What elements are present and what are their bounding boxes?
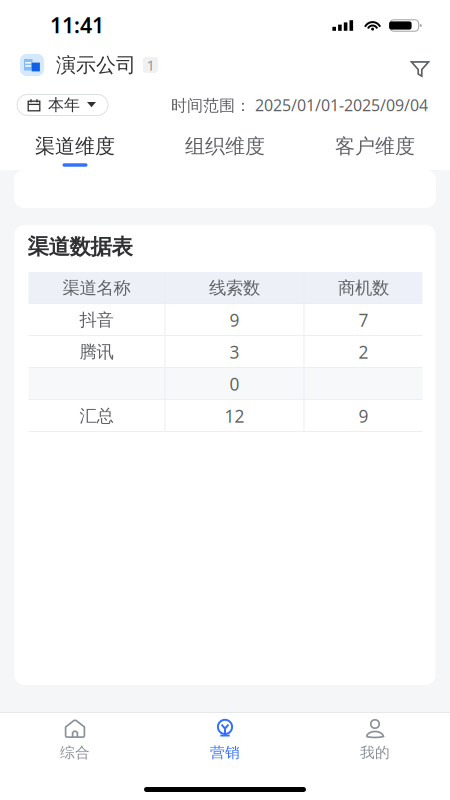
staticText: 12 [224, 404, 244, 427]
staticText: 抖音 [79, 309, 113, 331]
button[interactable]: 组织维度 [150, 124, 300, 170]
staticText: 9 [358, 404, 368, 427]
staticText: 客户维度 [335, 134, 415, 159]
staticText: 3 [229, 340, 239, 363]
button[interactable]: 营销 [150, 713, 300, 763]
staticText: 0 [229, 372, 239, 395]
button[interactable]: 演示公司 [20, 44, 158, 86]
staticText: 渠道数据表 [27, 234, 132, 260]
staticText: 1 [146, 55, 154, 75]
staticText: 腾讯 [79, 341, 113, 363]
button[interactable]: 我的 [300, 713, 450, 763]
button[interactable]: 筛选 [399, 44, 441, 86]
button[interactable]: 综合 [0, 713, 150, 763]
staticText: 11:41 [50, 11, 104, 39]
button[interactable]: 本年 [17, 94, 108, 115]
staticText: 综合 [60, 743, 90, 761]
staticText: 商机数 [338, 277, 389, 299]
staticText: 我的 [360, 743, 390, 761]
staticText: 组织维度 [185, 134, 265, 159]
staticText: 本年 [48, 95, 80, 115]
staticText: 线索数 [209, 277, 260, 299]
staticText: 7 [358, 308, 368, 331]
staticText: 渠道维度 [35, 134, 115, 159]
staticText: 演示公司 [56, 53, 136, 77]
staticText: 渠道名称 [62, 277, 130, 299]
staticText: 2 [358, 340, 368, 363]
staticText: 营销 [210, 743, 240, 761]
button[interactable]: 客户维度 [300, 124, 450, 170]
staticText: 汇总 [79, 405, 113, 427]
button[interactable]: 渠道维度 [0, 124, 150, 170]
staticText: 9 [229, 308, 239, 331]
staticText: 时间范围： 2025/01/01-2025/09/04 [171, 94, 428, 116]
